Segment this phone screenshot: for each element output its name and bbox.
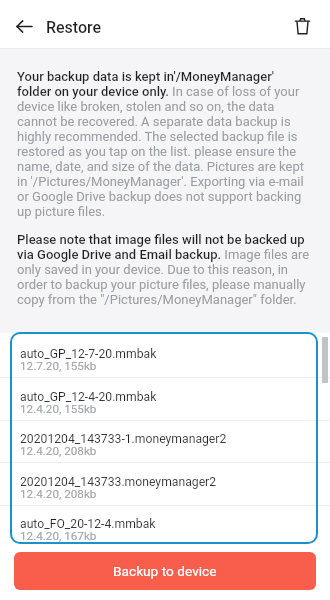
button[interactable]: Backup to device (14, 552, 316, 590)
staticText: Please note that image files will not be… (17, 232, 310, 307)
staticText: Your backup data is kept in'/MoneyManage… (17, 69, 310, 219)
staticText: Restore (46, 18, 102, 37)
staticText: 12.4.20, 208kb (20, 444, 97, 458)
button[interactable]: Back (0, 3, 48, 49)
staticText: 20201204_143733-1.moneymanager2 (20, 432, 227, 446)
staticText: Backup to device (113, 563, 217, 579)
button[interactable]: auto_GP_12-4-20.mmbak (0, 376, 330, 419)
button[interactable]: Delete (279, 3, 326, 49)
staticText: 12.4.20, 155kb (20, 402, 97, 416)
staticText: auto_FO_20-12-4.mmbak (20, 517, 156, 531)
button[interactable]: auto_FO_20-12-4.mmbak (0, 503, 330, 543)
button[interactable]: auto_GP_12-7-20.mmbak (0, 333, 330, 376)
staticText: auto_GP_12-4-20.mmbak (20, 390, 157, 404)
button[interactable]: 20201204_143733.moneymanager2 (0, 461, 330, 504)
staticText: 12.4.20, 167kb (20, 529, 97, 543)
staticText: 20201204_143733.moneymanager2 (20, 475, 217, 489)
button[interactable]: 20201204_143733-1.moneymanager2 (0, 418, 330, 461)
staticText: auto_GP_12-7-20.mmbak (20, 347, 157, 361)
staticText: 12.7.20, 155kb (20, 359, 97, 373)
staticText: 12.4.20, 208kb (20, 487, 97, 501)
